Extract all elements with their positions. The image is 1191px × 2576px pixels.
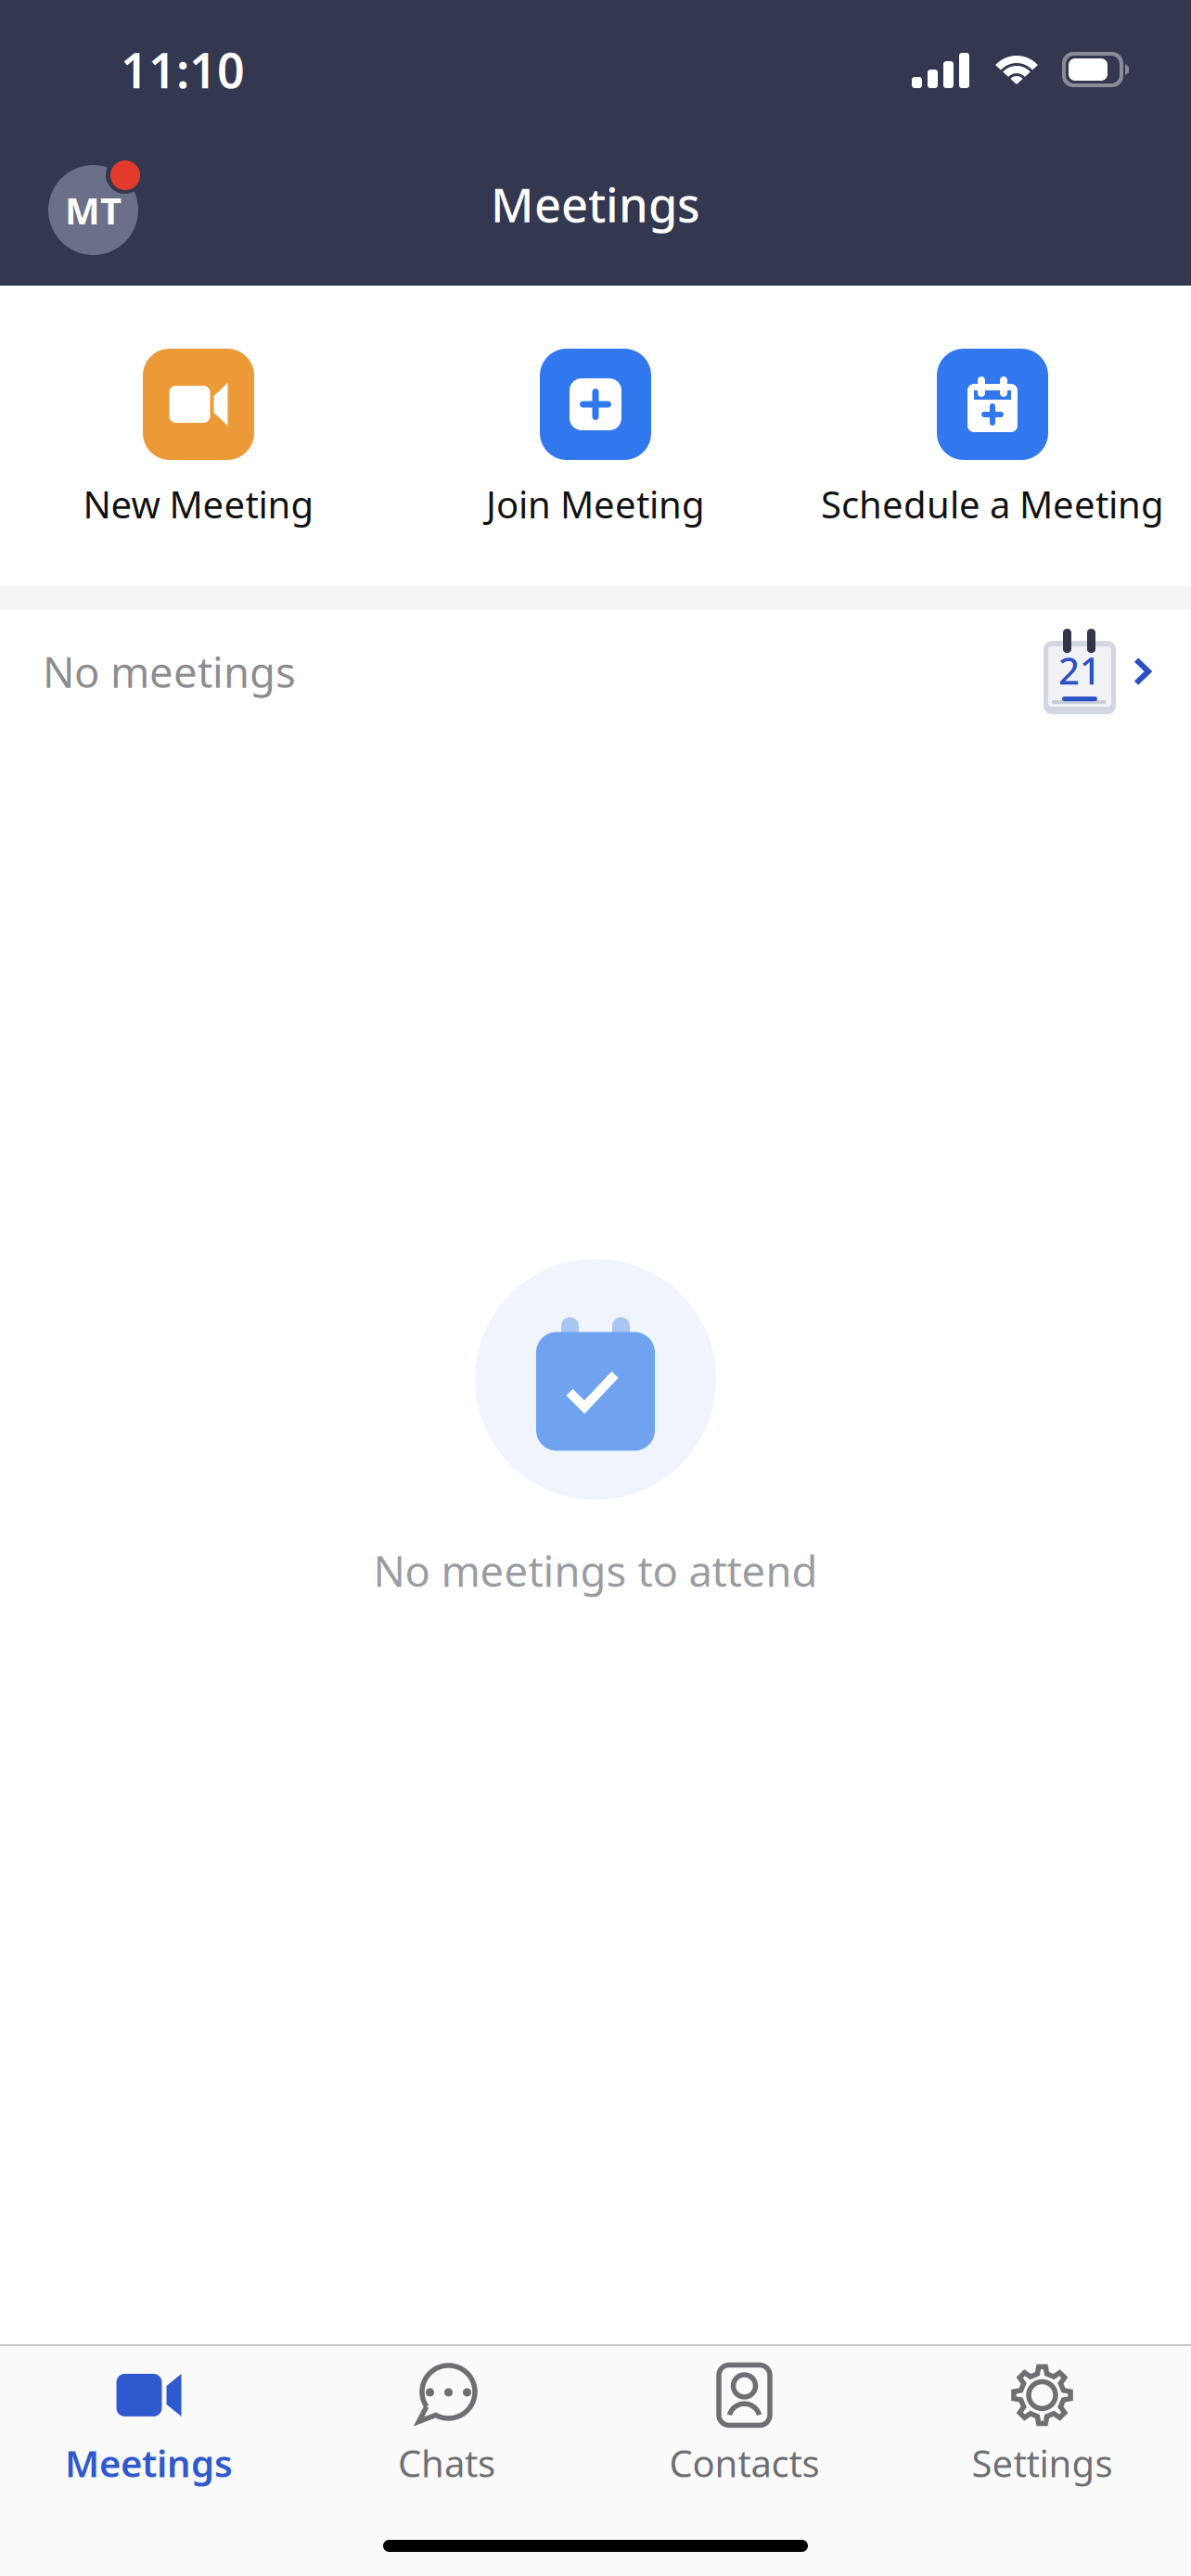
staticText: Contacts xyxy=(669,2438,820,2487)
button[interactable]: Chats xyxy=(298,2346,595,2487)
button[interactable]: Join Meeting xyxy=(397,349,794,529)
button[interactable]: Meetings xyxy=(0,2346,298,2487)
staticText: MT xyxy=(65,185,122,235)
staticText: Settings xyxy=(972,2438,1113,2487)
button[interactable]: Profile xyxy=(43,150,150,258)
staticText: Meetings xyxy=(65,2438,233,2487)
staticText: 11:10 xyxy=(121,38,245,102)
staticText: Join Meeting xyxy=(486,479,705,529)
staticText: New Meeting xyxy=(83,479,314,529)
button[interactable]: Contacts xyxy=(595,2346,893,2487)
button[interactable]: Settings xyxy=(893,2346,1191,2487)
staticText: No meetings to attend xyxy=(373,1543,818,1598)
button[interactable]: Schedule a Meeting xyxy=(794,349,1191,529)
button[interactable]: No meetings xyxy=(0,609,1191,719)
staticText: Meetings xyxy=(491,173,700,235)
staticText: No meetings xyxy=(43,644,296,699)
button[interactable]: New Meeting xyxy=(0,349,397,529)
staticText: 21 xyxy=(1058,645,1101,695)
staticText: Chats xyxy=(398,2438,495,2487)
staticText: Schedule a Meeting xyxy=(821,479,1164,529)
